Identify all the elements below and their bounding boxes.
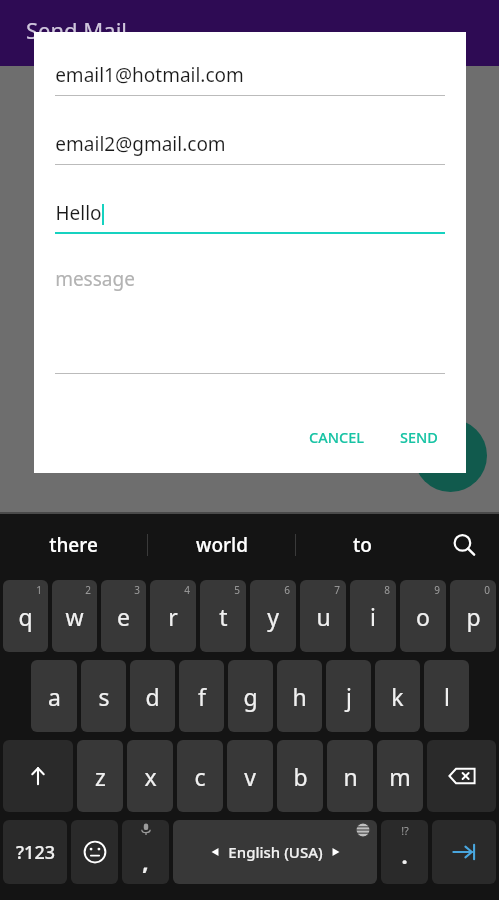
button[interactable]: English (USA) xyxy=(173,820,377,884)
staticText: p xyxy=(466,601,481,632)
button[interactable]: f xyxy=(179,660,224,732)
button[interactable]: world xyxy=(148,514,295,576)
button[interactable]: 7 xyxy=(300,580,346,652)
button[interactable]: Emoji xyxy=(71,820,118,884)
staticText: o xyxy=(416,601,430,632)
staticText: . xyxy=(401,840,408,870)
button[interactable]: l xyxy=(424,660,469,732)
staticText: e xyxy=(117,601,130,632)
button[interactable]: Next field xyxy=(432,820,496,884)
button[interactable]: d xyxy=(130,660,175,732)
staticText: 9 xyxy=(434,583,440,597)
staticText: 0 xyxy=(484,583,490,597)
staticText: SEND xyxy=(400,427,438,447)
button[interactable]: Shift xyxy=(3,740,73,812)
staticText: k xyxy=(391,681,404,712)
staticText: 2 xyxy=(85,583,91,597)
button[interactable]: 3 xyxy=(101,580,146,652)
button[interactable]: k xyxy=(375,660,420,732)
staticText: email1@hotmail.com xyxy=(55,62,244,88)
staticText: 5 xyxy=(234,583,240,597)
staticText: d xyxy=(145,681,160,712)
button[interactable]: 5 xyxy=(200,580,246,652)
staticText: m xyxy=(389,761,411,792)
button[interactable]: !? xyxy=(381,820,428,884)
button[interactable]: ?123 xyxy=(3,820,67,884)
button[interactable]: 9 xyxy=(400,580,446,652)
button[interactable]: m xyxy=(377,740,423,812)
staticText: h xyxy=(292,681,307,712)
staticText: !? xyxy=(401,823,409,838)
staticText: , xyxy=(142,846,149,876)
button[interactable]: a xyxy=(31,660,77,732)
staticText: s xyxy=(98,681,110,712)
staticText: i xyxy=(370,601,376,632)
button[interactable]: Compose mail xyxy=(414,419,487,492)
staticText: English (USA) xyxy=(228,842,323,862)
button[interactable]: Search xyxy=(429,514,499,576)
button[interactable]: b xyxy=(277,740,323,812)
staticText: q xyxy=(18,601,33,632)
button[interactable]: x xyxy=(127,740,173,812)
button[interactable]: Backspace xyxy=(427,740,496,812)
staticText: w xyxy=(65,601,84,632)
button[interactable]: j xyxy=(326,660,371,732)
staticText: email2@gmail.com xyxy=(55,131,226,157)
button[interactable]: 4 xyxy=(150,580,196,652)
button[interactable]: CANCEL xyxy=(297,417,376,457)
button[interactable]: email1@hotmail.com xyxy=(34,62,466,96)
button[interactable]: email2@gmail.com xyxy=(34,131,466,165)
button[interactable]: 2 xyxy=(52,580,97,652)
button[interactable]: v xyxy=(227,740,273,812)
staticText: CANCEL xyxy=(309,427,364,447)
staticText: 3 xyxy=(134,583,140,597)
staticText: world xyxy=(196,532,248,558)
button[interactable]: n xyxy=(327,740,373,812)
button[interactable]: h xyxy=(277,660,322,732)
staticText: c xyxy=(194,761,206,792)
staticText: to xyxy=(353,532,372,558)
staticText: message xyxy=(55,266,135,292)
staticText: y xyxy=(267,601,279,632)
staticText: Hello xyxy=(55,200,102,226)
staticText: z xyxy=(95,761,106,792)
button[interactable]: z xyxy=(77,740,123,812)
staticText: n xyxy=(343,761,358,792)
staticText: 7 xyxy=(334,583,340,597)
staticText: 4 xyxy=(184,583,190,597)
button[interactable]: Hello xyxy=(34,200,466,234)
button[interactable]: 8 xyxy=(350,580,396,652)
staticText: x xyxy=(144,761,157,792)
button[interactable]: g xyxy=(228,660,273,732)
button[interactable]: SEND xyxy=(388,417,450,457)
button[interactable]: there xyxy=(0,514,147,576)
staticText: 8 xyxy=(384,583,390,597)
button[interactable]: , xyxy=(122,820,169,884)
button[interactable]: 0 xyxy=(450,580,496,652)
staticText: a xyxy=(48,681,61,712)
staticText: g xyxy=(243,681,258,712)
staticText: u xyxy=(316,601,331,632)
staticText: j xyxy=(346,681,352,712)
staticText: f xyxy=(198,681,206,712)
button[interactable]: 6 xyxy=(250,580,296,652)
staticText: v xyxy=(244,761,256,792)
button[interactable]: to xyxy=(296,514,429,576)
staticText: 6 xyxy=(284,583,290,597)
button[interactable]: s xyxy=(81,660,126,732)
button[interactable]: 1 xyxy=(3,580,48,652)
staticText: b xyxy=(293,761,308,792)
staticText: ?123 xyxy=(16,840,55,865)
staticText: there xyxy=(49,532,98,558)
staticText: r xyxy=(168,601,178,632)
staticText: l xyxy=(444,681,450,712)
staticText: t xyxy=(219,601,228,632)
button[interactable]: c xyxy=(177,740,223,812)
button[interactable]: message xyxy=(34,266,466,374)
staticText: 1 xyxy=(36,583,42,597)
staticText: Send Mail xyxy=(26,15,127,45)
